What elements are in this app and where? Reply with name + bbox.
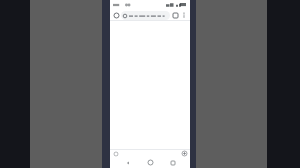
button[interactable] bbox=[121, 11, 170, 20]
button[interactable]: Home bbox=[145, 157, 156, 168]
button[interactable]: Back bbox=[122, 157, 133, 168]
button[interactable]: Tabs bbox=[171, 11, 180, 20]
button[interactable]: Recent apps bbox=[167, 157, 178, 168]
button[interactable]: Home bbox=[112, 11, 121, 20]
button[interactable]: More options bbox=[180, 11, 188, 19]
button[interactable]: Add bbox=[181, 150, 188, 157]
button[interactable]: Page actions bbox=[112, 150, 119, 157]
